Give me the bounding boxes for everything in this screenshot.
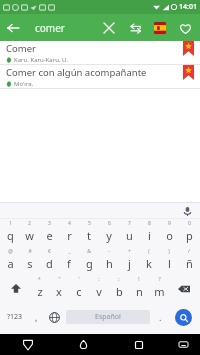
staticText: v — [96, 284, 102, 299]
button[interactable]: Español — [66, 310, 150, 324]
button[interactable]: 3 — [39, 219, 59, 247]
button[interactable]: ?123 — [2, 303, 28, 331]
button[interactable]: 7 — [119, 219, 139, 247]
button[interactable]: Clear — [96, 15, 122, 41]
staticText: 14:01 — [179, 2, 197, 12]
staticText: g — [86, 256, 93, 271]
staticText: - — [108, 248, 110, 255]
button[interactable]: Change keyboard language — [45, 303, 64, 331]
button[interactable]: ? — [149, 275, 169, 303]
staticText: 9 — [168, 220, 171, 227]
staticText: € — [48, 248, 51, 255]
staticText: comer — [35, 21, 65, 35]
staticText: . — [159, 311, 162, 323]
button[interactable]: Backspace — [169, 275, 199, 303]
staticText: b — [116, 284, 123, 299]
staticText: p — [186, 228, 193, 243]
staticText: y — [106, 228, 112, 243]
staticText: * — [38, 276, 41, 283]
staticText: ) — [168, 248, 170, 255]
staticText: ñ — [186, 256, 193, 271]
staticText: r — [67, 228, 72, 243]
button[interactable]: 6 — [99, 219, 119, 247]
button[interactable]: Back — [0, 15, 26, 41]
button[interactable]: Recent apps — [111, 334, 166, 355]
button[interactable]: - — [99, 247, 119, 275]
button[interactable]: Bookmark — [183, 65, 194, 80]
button[interactable]: ) — [159, 247, 179, 275]
button[interactable]: € — [39, 247, 59, 275]
staticText: + — [128, 248, 131, 255]
staticText: & — [87, 248, 91, 255]
button[interactable]: Search — [169, 303, 198, 331]
staticText: # — [28, 248, 32, 255]
button[interactable]: @ — [1, 247, 20, 275]
staticText: , — [35, 311, 38, 323]
staticText: : — [98, 276, 100, 283]
staticText: m — [154, 284, 165, 299]
staticText: ! — [138, 276, 140, 283]
staticText: w — [25, 228, 34, 243]
button[interactable]: 5 — [79, 219, 99, 247]
button[interactable]: Back — [0, 334, 56, 355]
button[interactable]: / — [179, 247, 199, 275]
button[interactable]: + — [119, 247, 139, 275]
button[interactable]: Favorite — [172, 15, 198, 41]
staticText: c — [76, 284, 82, 299]
staticText: z — [37, 284, 43, 299]
button[interactable]: & — [79, 247, 99, 275]
staticText: Comer — [6, 42, 36, 55]
staticText: 3 — [48, 220, 51, 227]
staticText: e — [46, 228, 53, 243]
staticText: u — [126, 228, 133, 243]
button[interactable]: 9 — [159, 219, 179, 247]
staticText: Español — [95, 312, 121, 322]
button[interactable]: * — [30, 275, 49, 303]
button[interactable]: " — [49, 275, 69, 303]
button[interactable]: 1 — [1, 219, 20, 247]
staticText: s — [27, 256, 33, 271]
button[interactable]: : — [89, 275, 109, 303]
button[interactable]: # — [20, 247, 39, 275]
button[interactable]: Keyboard — [166, 334, 200, 355]
button[interactable]: _ — [59, 247, 79, 275]
staticText: 0 — [188, 220, 191, 227]
button[interactable]: ' — [69, 275, 89, 303]
button[interactable]: Comer — [0, 41, 200, 64]
staticText: d — [46, 256, 53, 271]
staticText: ; — [118, 276, 120, 283]
button[interactable]: Voice input — [180, 204, 194, 218]
button[interactable]: Language Spanish — [148, 16, 172, 40]
staticText: 7 — [128, 220, 131, 227]
button[interactable]: Shift — [1, 275, 30, 303]
staticText: / — [188, 248, 190, 255]
button[interactable]: , — [28, 303, 45, 331]
staticText: 2 — [28, 220, 31, 227]
button[interactable]: 8 — [139, 219, 159, 247]
staticText: 5 — [88, 220, 91, 227]
staticText: i — [148, 228, 151, 243]
staticText: j — [128, 256, 131, 271]
button[interactable]: Swap languages — [122, 15, 148, 41]
staticText: h — [106, 256, 113, 271]
staticText: ? — [158, 276, 161, 283]
staticText: @ — [8, 248, 13, 255]
button[interactable]: ; — [109, 275, 129, 303]
staticText: 6 — [108, 220, 111, 227]
staticText: t — [87, 228, 91, 243]
staticText: l — [168, 256, 171, 271]
button[interactable]: . — [152, 303, 169, 331]
button[interactable]: Bookmark — [183, 41, 194, 56]
button[interactable]: Home — [56, 334, 111, 355]
staticText: Karu. Karu-Karu. U. — [14, 56, 68, 64]
staticText: Mo'ıra. — [14, 80, 34, 88]
button[interactable]: ( — [139, 247, 159, 275]
button[interactable]: Comer con algún acompañante — [0, 65, 200, 88]
button[interactable]: 2 — [20, 219, 39, 247]
button[interactable]: 4 — [59, 219, 79, 247]
button[interactable]: 0 — [179, 219, 199, 247]
button[interactable]: ! — [129, 275, 149, 303]
staticText: 1 — [9, 220, 12, 227]
staticText: ?123 — [7, 312, 23, 322]
staticText: Comer con algún acompañante — [6, 66, 147, 79]
